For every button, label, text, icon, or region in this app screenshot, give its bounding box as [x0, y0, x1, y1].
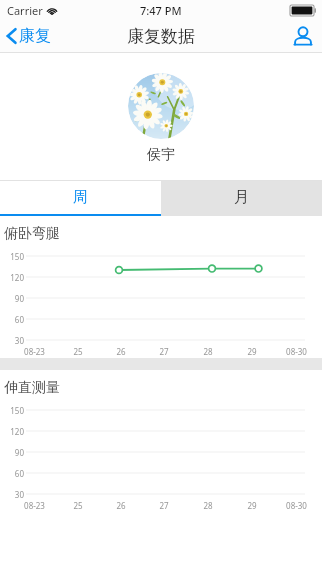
staticText: 90: [14, 293, 24, 304]
staticText: 25: [73, 346, 83, 357]
button[interactable]: 康复: [0, 22, 59, 50]
staticText: 30: [14, 489, 24, 500]
staticText: 08-23: [24, 346, 45, 357]
button[interactable]: 侯宇: [147, 146, 175, 164]
staticText: 27: [159, 346, 169, 357]
staticText: 120: [10, 426, 24, 437]
staticText: 俯卧弯腿: [4, 225, 60, 243]
button[interactable]: 月: [161, 181, 322, 214]
staticText: 60: [14, 468, 24, 479]
button[interactable]: Profile: [284, 22, 322, 50]
staticText: 25: [73, 500, 83, 511]
staticText: 26: [116, 500, 126, 511]
staticText: 90: [14, 447, 24, 458]
staticText: 伸直测量: [4, 379, 60, 397]
button[interactable]: 周: [0, 181, 161, 214]
staticText: 08-30: [286, 500, 307, 511]
staticText: 康复数据: [127, 26, 195, 47]
staticText: 7:47 PM: [140, 3, 182, 18]
staticText: Carrier: [7, 3, 43, 18]
staticText: 康复: [19, 26, 51, 46]
staticText: 29: [247, 500, 257, 511]
staticText: 150: [10, 251, 24, 262]
staticText: 周: [73, 188, 88, 207]
staticText: 月: [234, 188, 249, 207]
staticText: 08-23: [24, 500, 45, 511]
button[interactable]: Avatar: [128, 73, 194, 139]
staticText: 150: [10, 405, 24, 416]
staticText: 60: [14, 314, 24, 325]
staticText: 08-30: [286, 346, 307, 357]
staticText: 120: [10, 272, 24, 283]
staticText: 28: [203, 500, 213, 511]
staticText: 29: [247, 346, 257, 357]
staticText: 30: [14, 335, 24, 346]
staticText: 28: [203, 346, 213, 357]
staticText: 27: [159, 500, 169, 511]
staticText: 26: [116, 346, 126, 357]
